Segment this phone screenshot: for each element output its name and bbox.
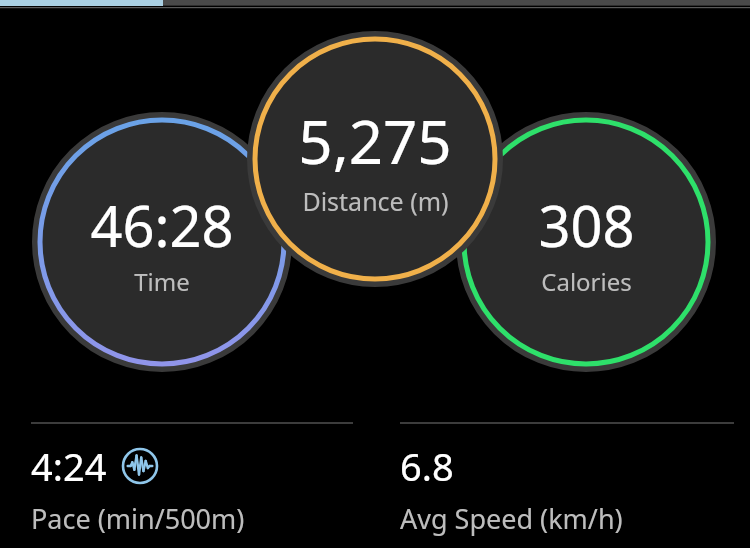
button[interactable]: Time 46:28 xyxy=(12,180,312,304)
staticText: 6.8 xyxy=(400,440,454,492)
staticText: 5,275 xyxy=(298,100,452,182)
staticText: Calories xyxy=(541,265,632,298)
button[interactable]: Distance 5,275 meters xyxy=(225,97,525,221)
button[interactable]: Calories 308 xyxy=(436,180,736,304)
staticText: 308 xyxy=(538,187,635,263)
button[interactable]: 6.8 xyxy=(369,416,750,537)
staticText: Pace (min/500m) xyxy=(31,500,245,537)
staticText: Time xyxy=(134,265,190,298)
staticText: Avg Speed (km/h) xyxy=(400,500,623,537)
button[interactable]: Heart rate source xyxy=(121,447,159,485)
button[interactable]: 4:24 xyxy=(0,416,369,537)
staticText: Distance (m) xyxy=(302,184,449,218)
staticText: 4:24 xyxy=(31,440,107,492)
staticText: 46:28 xyxy=(90,187,234,263)
